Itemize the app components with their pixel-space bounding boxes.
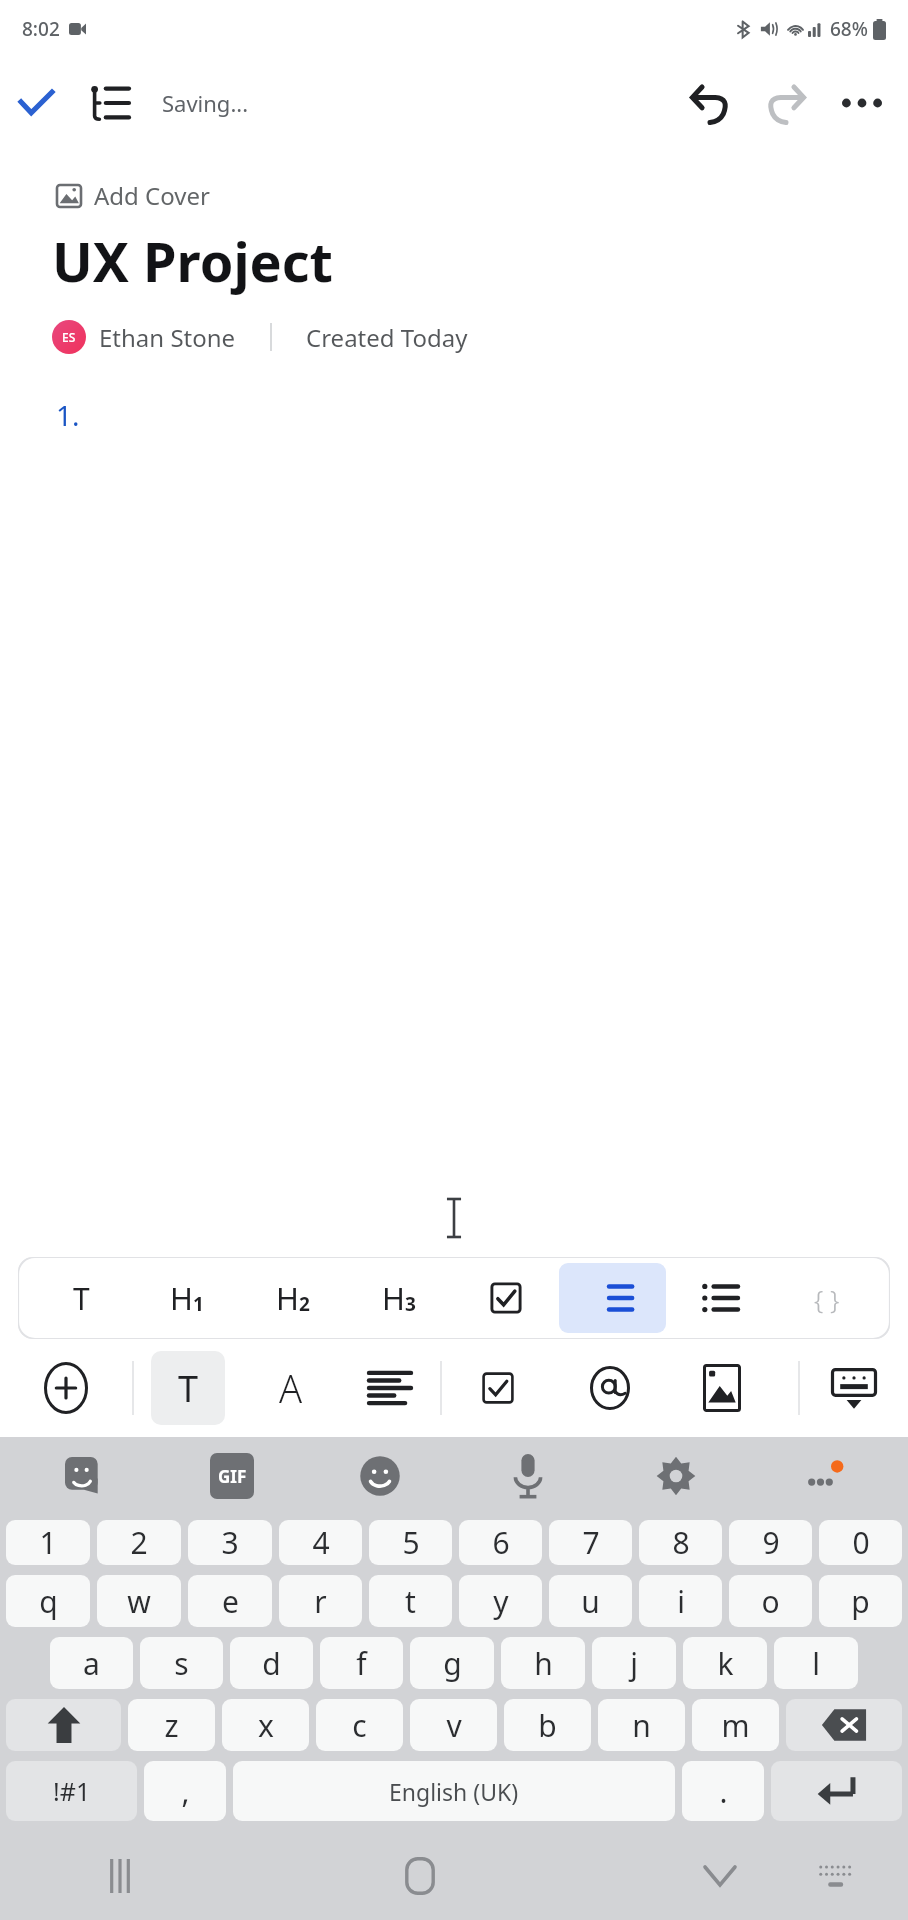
button[interactable]: Add Cover xyxy=(56,179,210,212)
button[interactable]: Image xyxy=(666,1339,778,1437)
staticText: 0 xyxy=(852,1522,870,1563)
staticText: t xyxy=(405,1581,416,1622)
button[interactable]: More xyxy=(750,1437,898,1515)
button[interactable]: Redo xyxy=(748,67,824,139)
button[interactable]: e xyxy=(188,1575,272,1627)
button[interactable]: Font xyxy=(242,1339,340,1437)
button[interactable]: Align xyxy=(340,1339,440,1437)
button[interactable]: T xyxy=(134,1339,242,1437)
button[interactable]: 9 xyxy=(729,1520,812,1565)
button[interactable]: Checklist xyxy=(442,1339,554,1437)
button[interactable]: v xyxy=(410,1699,497,1751)
button[interactable]: j xyxy=(592,1637,676,1689)
button[interactable]: c xyxy=(316,1699,403,1751)
button[interactable]: Outline xyxy=(72,67,146,139)
staticText: UX Project xyxy=(52,224,334,298)
button[interactable]: Done xyxy=(0,67,72,139)
button[interactable]: H xyxy=(240,1263,346,1333)
staticText: m xyxy=(721,1705,750,1746)
staticText: j xyxy=(630,1643,638,1684)
staticText: 1. xyxy=(56,396,80,434)
button[interactable]: !#1 xyxy=(6,1761,137,1821)
button[interactable]: 7 xyxy=(549,1520,632,1565)
button[interactable]: English (UK) xyxy=(233,1761,675,1821)
button[interactable]: f xyxy=(320,1637,403,1689)
staticText: 8 xyxy=(672,1522,690,1563)
staticText: e xyxy=(222,1581,239,1622)
button[interactable] xyxy=(786,1699,902,1751)
button[interactable]: Hide keyboard xyxy=(800,1339,908,1437)
button[interactable]: Home xyxy=(360,1832,480,1920)
button[interactable]: T xyxy=(28,1263,134,1333)
button[interactable]: w xyxy=(97,1575,181,1627)
button[interactable]: t xyxy=(369,1575,452,1627)
button[interactable]: q xyxy=(6,1575,90,1627)
button[interactable]: x xyxy=(222,1699,309,1751)
button[interactable]: Emoji xyxy=(306,1437,454,1515)
staticText: T xyxy=(178,1364,199,1413)
button[interactable]: Undo xyxy=(672,67,748,139)
staticText: 4 xyxy=(312,1522,330,1563)
button[interactable]: Recents xyxy=(60,1832,180,1920)
button[interactable]: Sticker xyxy=(10,1437,158,1515)
staticText: f xyxy=(356,1643,367,1684)
button[interactable]: m xyxy=(692,1699,779,1751)
button[interactable]: l xyxy=(774,1637,858,1689)
button[interactable]: 2 xyxy=(97,1520,181,1565)
button[interactable]: 4 xyxy=(279,1520,362,1565)
button[interactable]: Voice input xyxy=(454,1437,602,1515)
staticText: 8:02 xyxy=(22,16,60,42)
button[interactable]: Insert xyxy=(0,1339,132,1437)
button[interactable]: , xyxy=(144,1761,226,1821)
button[interactable]: { } xyxy=(773,1263,880,1333)
button[interactable]: i xyxy=(639,1575,722,1627)
button[interactable]: k xyxy=(683,1637,767,1689)
button[interactable]: 8 xyxy=(639,1520,722,1565)
button[interactable]: b xyxy=(504,1699,591,1751)
button[interactable]: Back xyxy=(660,1832,780,1920)
button[interactable] xyxy=(771,1761,902,1821)
button[interactable]: r xyxy=(279,1575,362,1627)
button[interactable]: s xyxy=(140,1637,223,1689)
button[interactable]: y xyxy=(459,1575,542,1627)
button[interactable]: n xyxy=(598,1699,685,1751)
staticText: T xyxy=(73,1278,90,1319)
button[interactable]: z xyxy=(128,1699,215,1751)
button[interactable]: u xyxy=(549,1575,632,1627)
button[interactable]: 0 xyxy=(819,1520,902,1565)
button[interactable]: 3 xyxy=(188,1520,272,1565)
button[interactable]: H xyxy=(134,1263,240,1333)
staticText: 5 xyxy=(402,1522,420,1563)
staticText: h xyxy=(534,1643,553,1684)
staticText: { } xyxy=(814,1281,840,1316)
staticText: w xyxy=(127,1581,151,1622)
staticText: x xyxy=(258,1705,274,1746)
button[interactable]: 5 xyxy=(369,1520,452,1565)
button[interactable]: d xyxy=(230,1637,313,1689)
button[interactable]: a xyxy=(50,1637,133,1689)
button[interactable] xyxy=(452,1263,559,1333)
button[interactable]: GIF xyxy=(158,1437,306,1515)
button[interactable]: H xyxy=(346,1263,452,1333)
button[interactable]: h xyxy=(501,1637,585,1689)
button[interactable] xyxy=(666,1263,773,1333)
button[interactable] xyxy=(559,1263,666,1333)
button[interactable]: Mention xyxy=(554,1339,666,1437)
button[interactable]: More options xyxy=(824,67,900,139)
staticText: 3 xyxy=(221,1522,239,1563)
button[interactable] xyxy=(6,1699,121,1751)
button[interactable]: o xyxy=(729,1575,812,1627)
button[interactable]: g xyxy=(410,1637,494,1689)
staticText: o xyxy=(761,1581,780,1622)
staticText: v xyxy=(446,1705,462,1746)
staticText: Add Cover xyxy=(94,179,210,212)
button[interactable]: p xyxy=(819,1575,902,1627)
button[interactable]: . xyxy=(682,1761,764,1821)
staticText: 9 xyxy=(762,1522,780,1563)
button[interactable]: 6 xyxy=(459,1520,542,1565)
button[interactable]: 1 xyxy=(6,1520,90,1565)
staticText: i xyxy=(677,1581,685,1622)
button[interactable]: Keyboard settings xyxy=(602,1437,750,1515)
staticText: A xyxy=(279,1362,303,1414)
button[interactable]: Switch keyboard xyxy=(780,1832,890,1920)
